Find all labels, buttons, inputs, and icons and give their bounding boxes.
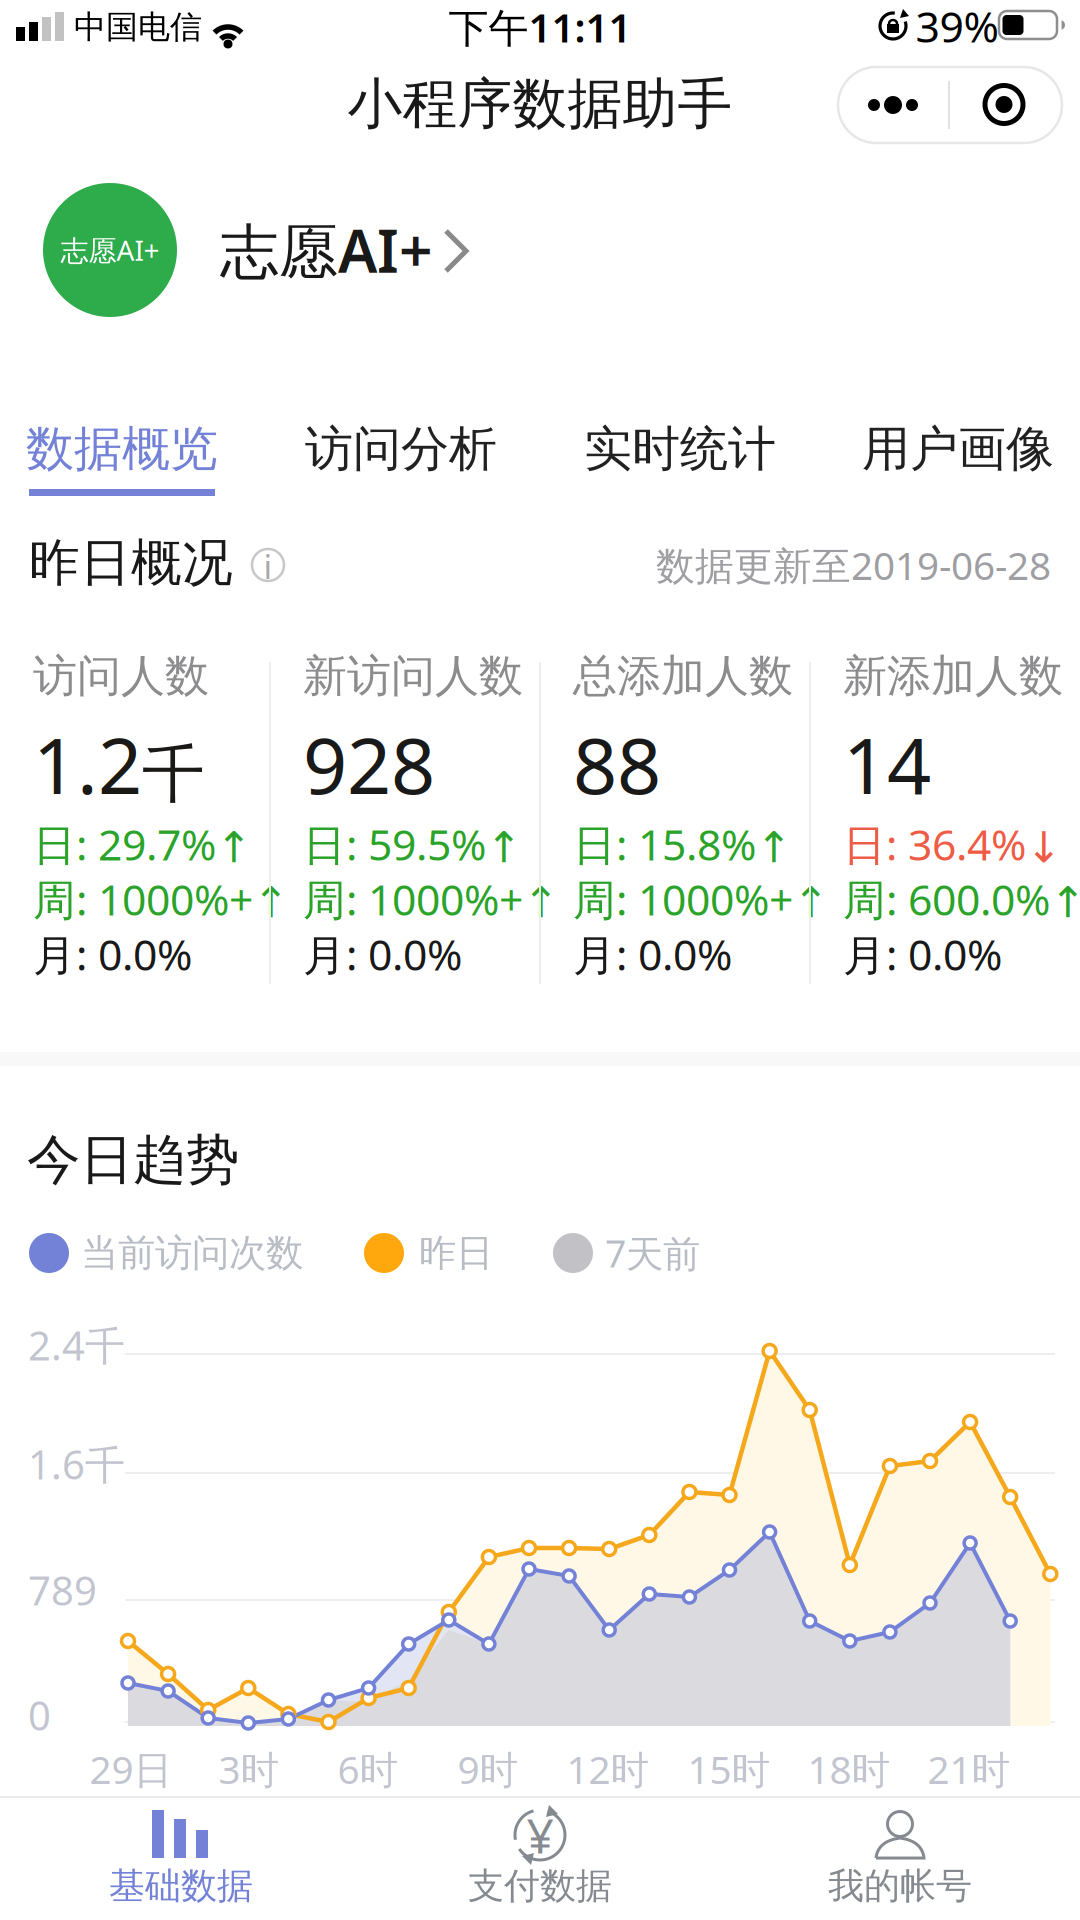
staticText: 6时 — [337, 1743, 398, 1795]
staticText: 29日 — [89, 1743, 172, 1795]
staticText: 3时 — [218, 1743, 279, 1795]
button[interactable]: 志愿AI+ — [0, 170, 1080, 330]
staticText: 14 — [843, 713, 931, 815]
staticText: 1.2千 — [33, 713, 205, 815]
button[interactable]: Info — [238, 535, 298, 595]
staticText: 新添加人数 — [843, 649, 1063, 703]
staticText: 928 — [303, 713, 435, 815]
staticText: 志愿AI+ — [220, 211, 433, 289]
staticText: ¥ — [526, 1803, 553, 1867]
button[interactable]: 实时统计 — [560, 404, 800, 516]
staticText: 0 — [28, 1688, 51, 1741]
button[interactable]: Close — [950, 67, 1058, 143]
staticText: 7天前 — [605, 1228, 700, 1278]
staticText: 昨日概况 — [29, 532, 233, 594]
staticText: 18时 — [807, 1743, 890, 1795]
staticText: 志愿AI+ — [60, 231, 159, 269]
staticText: 我的帐号 — [828, 1864, 972, 1908]
staticText: 数据更新至2019-06-28 — [656, 539, 1051, 591]
staticText: 39% — [915, 0, 998, 54]
button[interactable]: ¥ — [360, 1797, 720, 1920]
staticText: 2.4千 — [28, 1318, 125, 1371]
staticText: 月: 0.0% — [303, 926, 462, 982]
button[interactable]: 用户画像 — [838, 404, 1078, 516]
staticText: 日: 29.7%↑ — [33, 816, 252, 872]
staticText: 周: 1000%+↑ — [33, 871, 289, 927]
staticText: 实时统计 — [584, 419, 776, 478]
button[interactable]: 访问分析 — [281, 404, 521, 516]
staticText: 中国电信 — [74, 7, 202, 47]
button[interactable]: 数据概览 — [14, 415, 230, 505]
staticText: 日: 36.4%↓ — [843, 816, 1062, 872]
staticText: i — [263, 544, 272, 588]
staticText: 日: 59.5%↑ — [303, 816, 522, 872]
staticText: 周: 1000%+↑ — [573, 871, 829, 927]
staticText: 12时 — [566, 1743, 649, 1795]
staticText: 数据概览 — [26, 419, 218, 478]
staticText: 当前访问次数 — [81, 1230, 303, 1276]
staticText: 下午11:11 — [448, 0, 631, 53]
staticText: 月: 0.0% — [33, 926, 192, 982]
staticText: 15时 — [687, 1743, 770, 1795]
staticText: 1.6千 — [28, 1437, 125, 1490]
staticText: 小程序数据助手 — [347, 70, 732, 137]
staticText: 周: 600.0%↑ — [843, 871, 1080, 927]
staticText: 昨日 — [419, 1230, 493, 1276]
staticText: 周: 1000%+↑ — [303, 871, 559, 927]
staticText: 月: 0.0% — [843, 926, 1002, 982]
staticText: 789 — [28, 1563, 97, 1616]
button[interactable]: 我的帐号 — [720, 1797, 1080, 1920]
staticText: 支付数据 — [468, 1864, 612, 1908]
staticText: 21时 — [927, 1743, 1010, 1795]
staticText: 访问分析 — [305, 419, 497, 478]
button[interactable]: 基础数据 — [0, 1797, 360, 1920]
staticText: 今日趋势 — [27, 1127, 239, 1193]
staticText: 总添加人数 — [573, 649, 793, 703]
staticText: 基础数据 — [109, 1864, 253, 1908]
staticText: 88 — [573, 713, 661, 815]
staticText: 月: 0.0% — [573, 926, 732, 982]
staticText: 新访问人数 — [303, 649, 523, 703]
staticText: 访问人数 — [33, 649, 209, 703]
staticText: 9时 — [457, 1743, 518, 1795]
staticText: 用户画像 — [862, 419, 1054, 478]
button[interactable]: More — [838, 67, 946, 143]
staticText: 日: 15.8%↑ — [573, 816, 792, 872]
